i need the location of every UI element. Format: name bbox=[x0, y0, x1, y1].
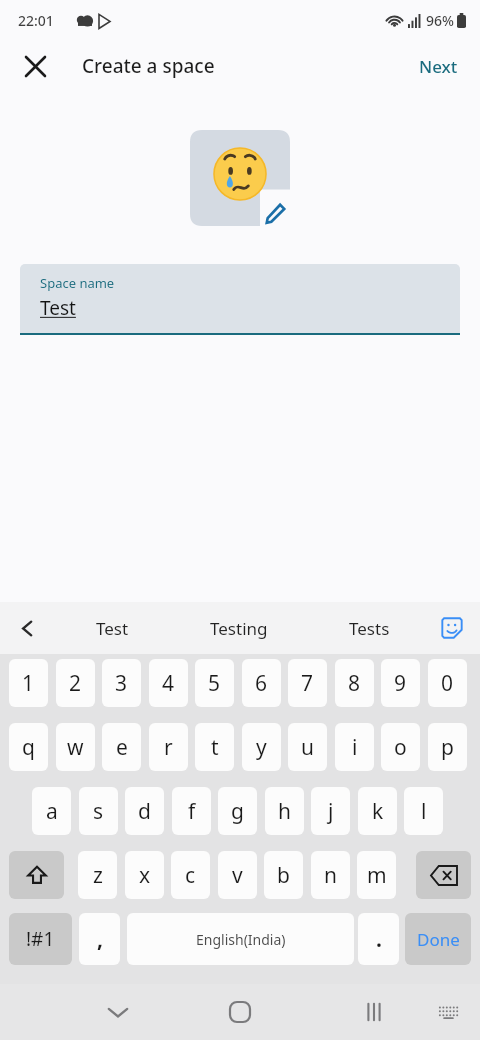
staticText: c bbox=[185, 861, 196, 890]
button[interactable]: 4 bbox=[149, 659, 188, 707]
button[interactable]: h bbox=[265, 787, 304, 835]
button[interactable]: m bbox=[357, 851, 396, 899]
staticText: 2 bbox=[69, 669, 82, 698]
button[interactable]: a bbox=[32, 787, 71, 835]
staticText: Next bbox=[419, 55, 458, 78]
button[interactable]: Switch keyboard bbox=[428, 992, 468, 1032]
button[interactable]: Previous suggestions bbox=[6, 607, 48, 649]
staticText: Testing bbox=[210, 617, 268, 640]
button[interactable]: f bbox=[172, 787, 211, 835]
staticText: 3 bbox=[115, 669, 128, 698]
button[interactable]: q bbox=[9, 723, 48, 771]
button[interactable]: k bbox=[358, 787, 397, 835]
button[interactable]: o bbox=[381, 723, 420, 771]
button[interactable]: 6 bbox=[242, 659, 281, 707]
staticText: 8 bbox=[348, 669, 361, 698]
button[interactable]: Testing bbox=[198, 609, 280, 648]
button[interactable]: 0 bbox=[428, 659, 467, 707]
button[interactable]: g bbox=[218, 787, 257, 835]
button[interactable]: Next bbox=[407, 47, 470, 86]
button[interactable]: Change space avatar bbox=[190, 130, 290, 226]
staticText: n bbox=[324, 861, 337, 890]
staticText: 22:01 bbox=[18, 11, 54, 30]
staticText: Create a space bbox=[82, 53, 215, 79]
staticText: m bbox=[367, 861, 387, 890]
staticText: Test bbox=[40, 295, 76, 321]
staticText: h bbox=[278, 797, 291, 826]
button[interactable]: z bbox=[78, 851, 117, 899]
button[interactable]: Space name bbox=[20, 264, 460, 335]
staticText: , bbox=[97, 925, 103, 954]
staticText: b bbox=[277, 861, 290, 890]
staticText: u bbox=[301, 733, 314, 762]
button[interactable]: Tests bbox=[337, 609, 402, 648]
button[interactable]: b bbox=[264, 851, 303, 899]
staticText: Space name bbox=[40, 274, 115, 292]
staticText: t bbox=[211, 733, 219, 762]
button[interactable]: p bbox=[428, 723, 467, 771]
button[interactable]: 1 bbox=[9, 659, 48, 707]
staticText: !#1 bbox=[26, 926, 55, 952]
staticText: 1 bbox=[22, 669, 35, 698]
button[interactable]: y bbox=[242, 723, 281, 771]
staticText: j bbox=[328, 797, 334, 826]
staticText: Tests bbox=[349, 617, 390, 640]
staticText: q bbox=[22, 733, 35, 762]
staticText: g bbox=[231, 797, 244, 826]
staticText: d bbox=[138, 797, 151, 826]
button[interactable]: , bbox=[79, 913, 120, 965]
button[interactable]: e bbox=[102, 723, 141, 771]
button[interactable]: n bbox=[311, 851, 350, 899]
button[interactable]: t bbox=[195, 723, 234, 771]
button[interactable]: . bbox=[358, 913, 399, 965]
button[interactable]: c bbox=[171, 851, 210, 899]
staticText: Done bbox=[417, 928, 460, 951]
button[interactable]: Recent apps bbox=[350, 988, 398, 1036]
button[interactable]: l bbox=[404, 787, 443, 835]
staticText: 0 bbox=[441, 669, 454, 698]
staticText: e bbox=[116, 733, 128, 762]
button[interactable]: Done bbox=[405, 913, 471, 965]
button[interactable]: 9 bbox=[381, 659, 420, 707]
staticText: w bbox=[67, 733, 84, 762]
button[interactable]: Hide keyboard bbox=[94, 988, 142, 1036]
button[interactable]: Close bbox=[10, 41, 60, 91]
button[interactable]: 7 bbox=[288, 659, 327, 707]
button[interactable]: s bbox=[79, 787, 118, 835]
button[interactable]: r bbox=[149, 723, 188, 771]
button[interactable]: w bbox=[56, 723, 95, 771]
staticText: a bbox=[46, 797, 58, 826]
staticText: l bbox=[421, 797, 427, 826]
staticText: 5 bbox=[208, 669, 221, 698]
button[interactable]: Shift bbox=[9, 851, 64, 899]
button[interactable]: x bbox=[125, 851, 164, 899]
button[interactable]: u bbox=[288, 723, 327, 771]
staticText: p bbox=[441, 733, 454, 762]
button[interactable]: Stickers bbox=[432, 608, 472, 648]
button[interactable]: 3 bbox=[102, 659, 141, 707]
staticText: 4 bbox=[162, 669, 175, 698]
staticText: Test bbox=[96, 617, 129, 640]
button[interactable]: 8 bbox=[335, 659, 374, 707]
button[interactable]: Home bbox=[216, 988, 264, 1036]
button[interactable]: v bbox=[218, 851, 257, 899]
staticText: 7 bbox=[301, 669, 314, 698]
staticText: y bbox=[256, 733, 267, 762]
button[interactable]: 5 bbox=[195, 659, 234, 707]
staticText: v bbox=[232, 861, 243, 890]
button[interactable]: Test bbox=[84, 609, 141, 648]
button[interactable]: !#1 bbox=[9, 913, 72, 965]
staticText: f bbox=[188, 797, 196, 826]
button[interactable]: i bbox=[335, 723, 374, 771]
staticText: r bbox=[164, 733, 173, 762]
staticText: i bbox=[352, 733, 358, 762]
button[interactable]: English(India) bbox=[127, 913, 354, 965]
button[interactable]: 2 bbox=[56, 659, 95, 707]
button[interactable]: Backspace bbox=[416, 851, 471, 899]
staticText: 6 bbox=[255, 669, 268, 698]
staticText: z bbox=[93, 861, 103, 890]
button[interactable]: d bbox=[125, 787, 164, 835]
staticText: . bbox=[376, 925, 382, 954]
button[interactable]: j bbox=[311, 787, 350, 835]
staticText: 9 bbox=[394, 669, 407, 698]
